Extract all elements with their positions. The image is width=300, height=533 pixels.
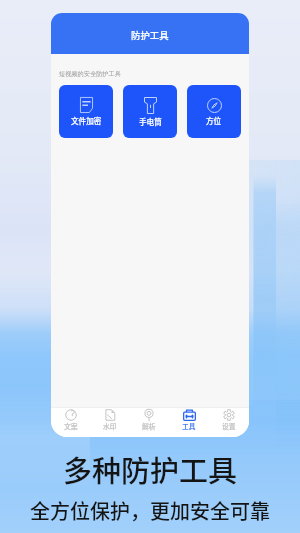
staticText: 解析	[142, 421, 156, 431]
staticText: 水印	[103, 421, 117, 431]
staticText: 全方位保护，更加安全可靠	[30, 496, 270, 525]
button[interactable]: 解析	[129, 408, 169, 437]
staticText: 手电筒	[139, 116, 162, 127]
staticText: 文件加密	[71, 115, 102, 126]
button[interactable]: 设置	[209, 408, 249, 437]
button[interactable]: 方位	[187, 85, 241, 138]
staticText: 文案	[64, 421, 78, 431]
staticText: 多种防护工具	[63, 448, 238, 490]
staticText: 短视频的安全防护工具	[59, 70, 121, 78]
button[interactable]: 工具	[169, 408, 209, 437]
staticText: 方位	[206, 115, 222, 126]
button[interactable]: 水印	[90, 408, 129, 437]
staticText: 防护工具	[131, 28, 169, 42]
staticText: 工具	[182, 421, 196, 431]
staticText: 设置	[222, 421, 236, 431]
button[interactable]: 文案	[51, 408, 90, 437]
button[interactable]: 手电筒	[123, 85, 177, 138]
button[interactable]: 文件加密	[59, 85, 113, 138]
